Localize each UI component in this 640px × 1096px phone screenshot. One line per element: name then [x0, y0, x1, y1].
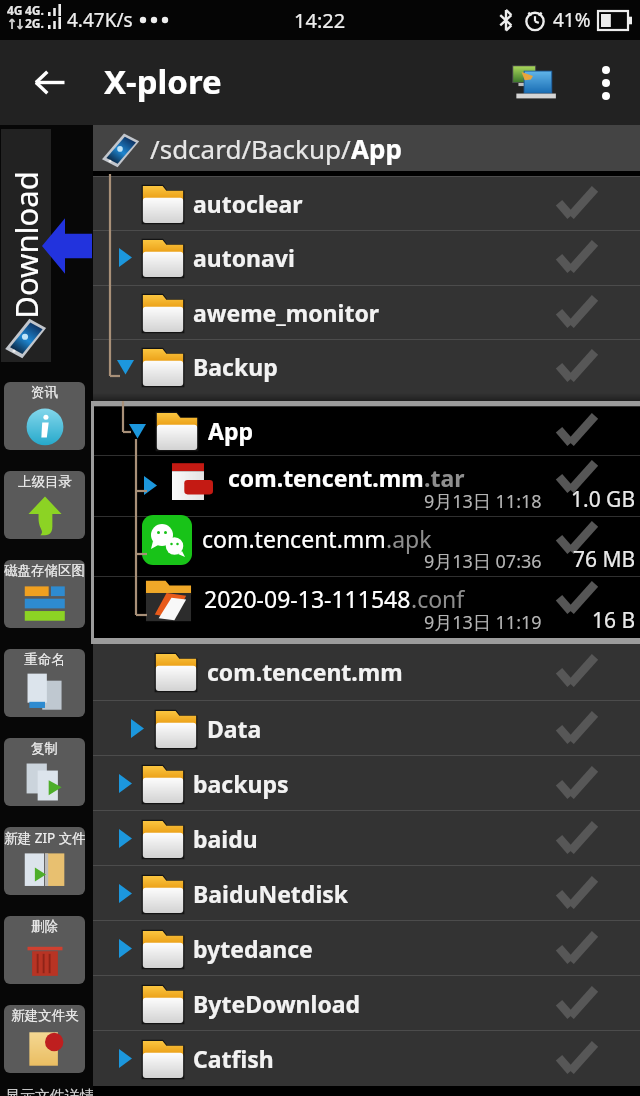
staticText: 1.0 GB [571, 485, 636, 514]
button[interactable]: Back [12, 40, 86, 125]
staticText: 新建文件夹 [11, 1007, 79, 1024]
staticText: Backup [193, 351, 278, 382]
button[interactable]: Remote PC [498, 48, 568, 118]
button[interactable]: autoclear [93, 176, 640, 231]
button[interactable]: com.tencent.mm [93, 643, 640, 700]
button[interactable]: 新建文件夹 [4, 1005, 85, 1073]
button[interactable]: aweme_monitor [93, 285, 640, 340]
staticText: X-plore [104, 59, 222, 104]
button[interactable]: Catfish [93, 1030, 640, 1086]
button[interactable]: Backup [93, 339, 640, 394]
button[interactable]: autonavi [93, 230, 640, 285]
staticText: 41% [553, 7, 591, 33]
button[interactable]: bytedance [93, 920, 640, 976]
button[interactable]: BaiduNetdisk [93, 865, 640, 921]
button[interactable]: 新建 ZIP 文件 [4, 827, 85, 895]
staticText: 4.47K/s [67, 7, 133, 33]
button[interactable]: com.tencent.mm [94, 455, 640, 516]
staticText: 磁盘存储区图 [4, 562, 85, 579]
staticText: .conf [411, 583, 465, 614]
button[interactable]: 2020-09-13-111548 [94, 576, 640, 637]
button[interactable]: 复制 [4, 738, 85, 806]
button[interactable]: 重命名 [4, 649, 85, 717]
staticText: Download [5, 171, 47, 319]
staticText: 重命名 [24, 651, 65, 668]
staticText: 资讯 [31, 384, 58, 401]
staticText: 2020-09-13-111548 [204, 583, 411, 614]
staticText: 显示文件详情 [5, 1087, 95, 1096]
button[interactable]: 上级目录 [4, 471, 85, 539]
button[interactable]: App [94, 406, 640, 455]
staticText: /sdcard/Backup/ [150, 131, 351, 166]
staticText: 2G. [25, 15, 44, 31]
staticText: Catfish [193, 1043, 274, 1074]
staticText: com.tencent.mm [207, 656, 403, 687]
staticText: App [351, 131, 402, 166]
staticText: 复制 [31, 740, 58, 757]
staticText: 删除 [31, 918, 58, 935]
staticText: 76 MB [573, 545, 636, 574]
button[interactable]: com.tencent.mm [94, 516, 640, 576]
staticText: 14:22 [294, 7, 346, 34]
staticText: com.tencent.mm [202, 523, 386, 554]
button[interactable]: baidu [93, 810, 640, 866]
staticText: 9月13日 07:36 [424, 549, 542, 574]
staticText: 4G. [25, 2, 44, 18]
button[interactable] [1, 129, 51, 362]
staticText: .apk [386, 523, 432, 554]
staticText: bytedance [193, 933, 313, 964]
staticText: com.tencent.mm [228, 462, 424, 493]
staticText: autoclear [193, 188, 303, 219]
staticText: autonavi [193, 242, 295, 273]
staticText: 16 B [592, 606, 636, 635]
staticText: 9月13日 11:19 [424, 610, 542, 635]
button[interactable]: 磁盘存储区图 [4, 560, 85, 628]
button[interactable]: 删除 [4, 916, 85, 984]
button[interactable]: /sdcard/Backup/ [93, 125, 640, 171]
staticText: baidu [193, 823, 258, 854]
staticText: 4G [7, 2, 23, 18]
staticText: .tar [424, 462, 465, 493]
staticText: ByteDownload [193, 988, 361, 1019]
staticText: aweme_monitor [193, 297, 380, 328]
staticText: App [208, 415, 253, 446]
staticText: 9月13日 11:18 [424, 489, 542, 514]
button[interactable]: ByteDownload [93, 975, 640, 1031]
button[interactable]: 资讯 [4, 382, 85, 450]
staticText: Data [207, 713, 262, 744]
staticText: BaiduNetdisk [193, 878, 349, 909]
staticText: backups [193, 768, 289, 799]
staticText: 上级目录 [18, 473, 72, 490]
button[interactable]: Data [93, 700, 640, 756]
staticText: 新建 ZIP 文件 [4, 829, 85, 847]
button[interactable]: More options [578, 55, 634, 111]
button[interactable]: backups [93, 755, 640, 811]
